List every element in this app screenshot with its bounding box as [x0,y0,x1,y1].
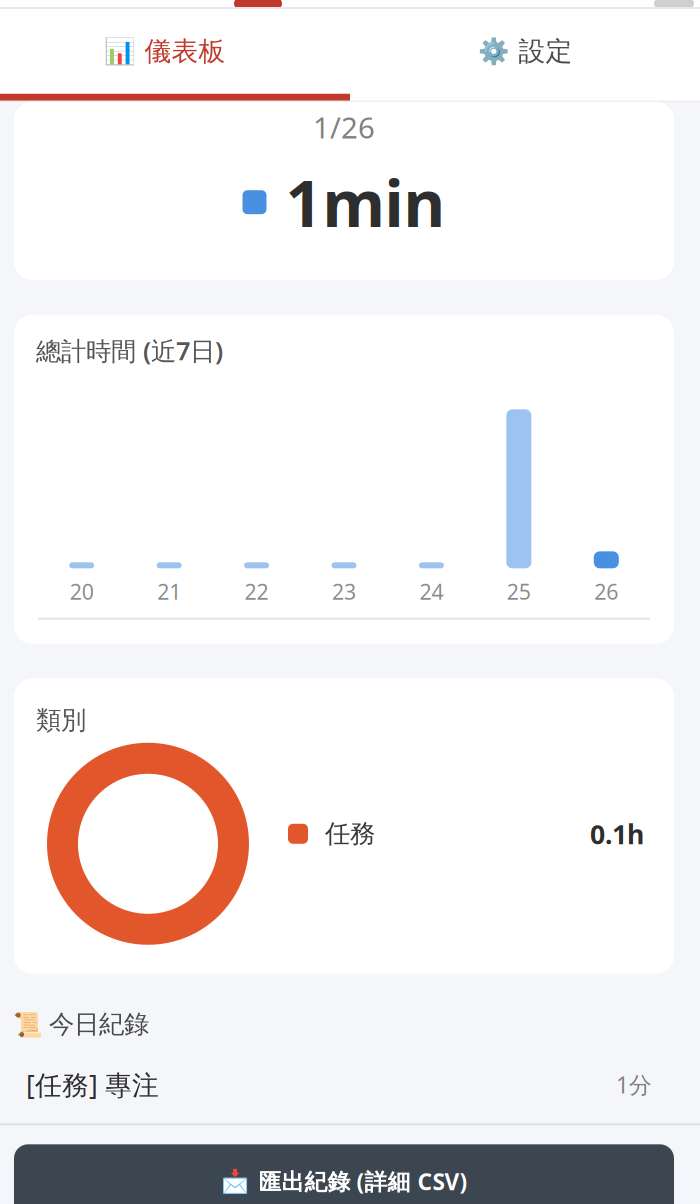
staticText: 類別 [36,705,86,736]
staticText: 今日紀錄 [49,1009,149,1040]
button[interactable]: ⚙️ [350,9,700,101]
staticText: [任務] 專注 [26,1067,159,1102]
staticText: 設定 [518,35,572,68]
button[interactable]: 📩 [14,1144,674,1204]
staticText: 📊 [103,37,135,66]
staticText: 25 [507,577,531,606]
staticText: 1min [285,160,445,245]
staticText: 📩 [220,1168,248,1194]
staticText: 24 [419,577,443,606]
staticText: 1分 [616,1070,652,1100]
staticText: 任務 [325,818,375,849]
staticText: 21 [157,577,181,606]
staticText: 20 [70,577,94,606]
staticText: 0.1h [590,816,644,851]
staticText: 1/26 [313,108,375,147]
button[interactable]: 📊 [0,9,350,101]
staticText: ⚙️ [477,37,509,66]
staticText: 儀表板 [144,35,225,68]
staticText: 26 [594,577,618,606]
staticText: 22 [245,577,269,606]
staticText: 總計時間 (近7日) [36,334,223,367]
staticText: 23 [332,577,356,606]
staticText: 📜 [13,1011,43,1038]
staticText: 匯出紀錄 (詳細 CSV) [258,1166,467,1196]
